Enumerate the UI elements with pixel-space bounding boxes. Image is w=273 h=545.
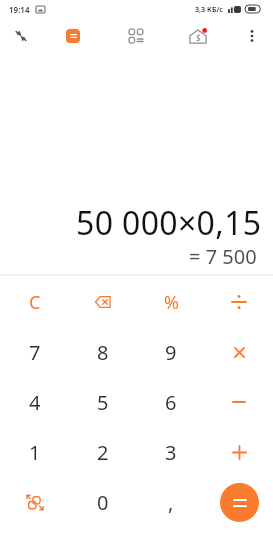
other: Subtract — [233, 400, 245, 404]
staticText: 0 — [97, 489, 109, 516]
staticText: 4 — [29, 389, 41, 416]
staticText: 6 — [165, 389, 177, 416]
staticText: 19:14 — [9, 4, 30, 15]
button[interactable]: Multiply — [205, 327, 273, 377]
other: Divide — [232, 295, 246, 309]
button[interactable]: 9 — [137, 327, 205, 377]
button[interactable]: More options — [236, 20, 268, 52]
button[interactable]: Divide — [205, 277, 273, 327]
staticText: 1 — [29, 439, 41, 466]
button[interactable]: Equals — [220, 483, 259, 522]
button[interactable]: 2 — [69, 427, 137, 477]
button[interactable]: 6 — [137, 377, 205, 427]
button[interactable]: Calculator mode — [66, 29, 80, 43]
button[interactable]: 0 — [69, 477, 137, 527]
button[interactable]: 5 — [69, 377, 137, 427]
button[interactable]: C — [0, 277, 69, 327]
button[interactable]: 3 — [137, 427, 205, 477]
staticText: % — [164, 290, 179, 315]
staticText: 50 000×0,15 — [76, 201, 262, 245]
other: Multiply — [234, 347, 245, 358]
staticText: 3 — [165, 439, 177, 466]
button[interactable]: Unit converter — [0, 477, 69, 527]
staticText: 9 — [165, 339, 177, 366]
button[interactable]: 8 — [69, 327, 137, 377]
button[interactable]: Collapse — [5, 20, 37, 52]
button[interactable]: 4 — [0, 377, 69, 427]
staticText: $ — [196, 32, 201, 43]
button[interactable]: Scientific functions — [120, 20, 152, 52]
staticText: 5 — [97, 389, 109, 416]
button[interactable]: , — [137, 477, 205, 527]
staticText: 2 — [97, 439, 109, 466]
staticText: = 7 500 — [189, 243, 257, 270]
staticText: 7 — [29, 339, 41, 366]
button[interactable]: Add — [205, 427, 273, 477]
other: Backspace — [95, 296, 111, 308]
button[interactable]: Subtract — [205, 377, 273, 427]
button[interactable]: 1 — [0, 427, 69, 477]
staticText: C — [29, 290, 41, 315]
button[interactable]: Mortgage calculator — [182, 20, 214, 52]
staticText: 8 — [97, 339, 109, 366]
staticText: 3,3 КБ/с — [195, 4, 224, 14]
other: Add — [233, 446, 246, 459]
button[interactable]: % — [137, 277, 205, 327]
other: Unit converter — [26, 494, 44, 511]
button[interactable]: 7 — [0, 327, 69, 377]
button[interactable]: Backspace — [69, 277, 137, 327]
staticText: , — [168, 489, 174, 516]
